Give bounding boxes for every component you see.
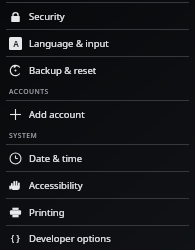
staticText: Language & input bbox=[29, 37, 109, 50]
button[interactable]: Accessibility bbox=[0, 172, 195, 198]
staticText: Add account bbox=[29, 108, 85, 121]
staticText: Date & time bbox=[29, 152, 83, 165]
button[interactable]: { } bbox=[0, 226, 195, 250]
staticText: Accessibility bbox=[29, 179, 83, 192]
staticText: Security bbox=[29, 10, 65, 23]
button[interactable]: Backup & reset bbox=[0, 57, 195, 83]
button[interactable]: Add account bbox=[0, 101, 195, 127]
staticText: Backup & reset bbox=[29, 64, 97, 77]
button[interactable]: Security bbox=[0, 3, 195, 29]
button[interactable]: A bbox=[0, 30, 195, 56]
button[interactable]: Printing bbox=[0, 199, 195, 225]
staticText: SYSTEM bbox=[9, 131, 38, 140]
staticText: Printing bbox=[29, 206, 65, 219]
button[interactable]: Date & time bbox=[0, 145, 195, 171]
staticText: ACCOUNTS bbox=[9, 87, 49, 96]
staticText: Developer options bbox=[29, 232, 111, 245]
staticText: A bbox=[13, 38, 19, 49]
staticText: { } bbox=[11, 233, 20, 245]
